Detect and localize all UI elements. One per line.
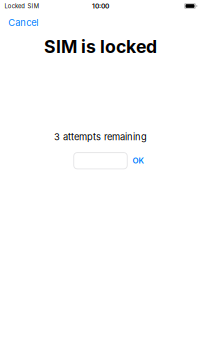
staticText: Locked SIM bbox=[5, 2, 39, 10]
button[interactable]: OK bbox=[132, 153, 145, 169]
button[interactable]: Cancel bbox=[0, 12, 44, 32]
staticText: 3 attempts remaining bbox=[54, 131, 147, 143]
button[interactable]: SIM PIN bbox=[74, 153, 127, 169]
staticText: 10:00 bbox=[92, 2, 109, 10]
staticText: SIM is locked bbox=[44, 36, 157, 57]
staticText: OK bbox=[133, 156, 145, 165]
staticText: Cancel bbox=[8, 17, 38, 28]
